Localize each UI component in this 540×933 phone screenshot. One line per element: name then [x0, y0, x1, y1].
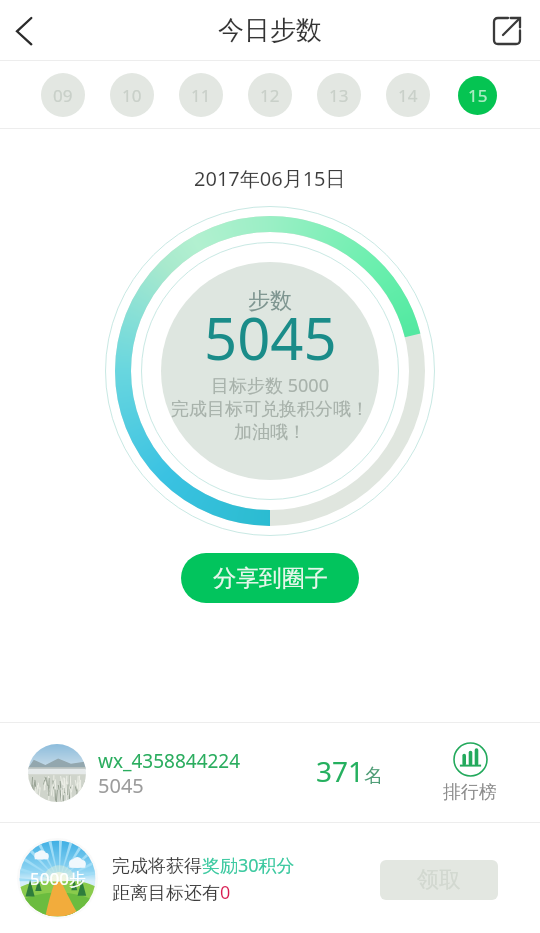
staticText: 领取 — [417, 866, 461, 894]
button[interactable]: 11 — [179, 73, 223, 117]
button[interactable]: Share — [485, 9, 529, 53]
staticText: 步数 — [248, 287, 292, 315]
staticText: 371名 — [316, 752, 384, 790]
staticText: 13 — [329, 84, 349, 107]
staticText: 11 — [191, 84, 211, 107]
staticText: 15 — [468, 84, 488, 107]
staticText: 14 — [398, 84, 418, 107]
staticText: 09 — [53, 84, 73, 107]
staticText: wx_4358844224 — [98, 748, 241, 774]
button[interactable]: 10 — [110, 73, 154, 117]
button[interactable]: 分享到圈子 — [181, 553, 359, 603]
button[interactable]: 09 — [41, 73, 85, 117]
staticText: 5045 — [98, 772, 144, 799]
staticText: 目标步数 5000 完成目标可兑换积分哦！ 加油哦！ — [171, 373, 369, 443]
button[interactable]: 排行榜 — [434, 742, 506, 804]
staticText: 排行榜 — [443, 781, 497, 804]
staticText: 5045 — [204, 298, 337, 377]
staticText: 距离目标还有0 — [112, 880, 231, 905]
button[interactable]: Back — [0, 7, 48, 55]
button[interactable]: 15 — [458, 76, 497, 115]
button[interactable]: 12 — [248, 73, 292, 117]
button[interactable]: 领取 — [380, 860, 498, 900]
button[interactable]: wx_4358844224 — [0, 723, 540, 822]
staticText: 分享到圈子 — [213, 564, 328, 593]
staticText: 5000步 — [30, 867, 86, 890]
button[interactable]: 13 — [317, 73, 361, 117]
staticText: 完成将获得奖励30积分 — [112, 853, 295, 878]
staticText: 今日步数 — [218, 14, 322, 47]
staticText: 2017年06月15日 — [194, 165, 346, 192]
staticText: 12 — [260, 84, 280, 107]
button[interactable]: 14 — [386, 73, 430, 117]
staticText: 10 — [122, 84, 142, 107]
